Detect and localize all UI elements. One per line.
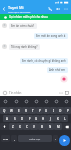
button[interactable]: Z <box>9 123 16 130</box>
button[interactable]: W <box>8 107 15 114</box>
button[interactable]: Anh nhớ em <box>49 68 66 72</box>
staticText: A <box>6 117 8 121</box>
button[interactable]: Emoji <box>2 90 8 96</box>
staticText: Y <box>39 109 41 113</box>
button[interactable]: Q <box>0 107 8 114</box>
staticText: Tin nhắn <box>9 91 22 95</box>
button[interactable]: Space <box>18 135 52 142</box>
staticText: T <box>32 109 34 113</box>
staticText: K <box>57 117 59 121</box>
button[interactable]: U <box>43 107 50 114</box>
button[interactable]: H <box>40 115 47 122</box>
button[interactable]: Backspace <box>62 123 71 130</box>
staticText: Z <box>12 125 14 129</box>
button[interactable]: Em mới ăn xong anh à <box>36 34 66 38</box>
staticText: Tiếng Việt <box>29 137 41 140</box>
staticText: H <box>42 117 45 121</box>
button[interactable]: Theme <box>51 98 61 104</box>
button[interactable]: Send <box>59 135 70 146</box>
staticText: G <box>35 117 38 121</box>
button[interactable]: T <box>29 107 36 114</box>
button[interactable]: GIF <box>11 98 21 104</box>
button[interactable]: N <box>46 123 54 130</box>
button[interactable]: Settings <box>0 98 11 104</box>
button[interactable]: J <box>47 115 54 122</box>
button[interactable]: S <box>11 115 19 122</box>
button[interactable]: Tối nay rảnh không? <box>11 45 38 49</box>
button[interactable]: I <box>50 107 57 114</box>
button[interactable]: X <box>16 123 23 130</box>
button[interactable]: F <box>26 115 33 122</box>
button[interactable]: More <box>58 90 64 96</box>
button[interactable]: Em ăn cơm chưa? <box>11 24 35 28</box>
button[interactable]: Clipboard <box>31 98 41 104</box>
staticText: L <box>64 117 66 121</box>
staticText: R <box>25 109 27 113</box>
button[interactable]: Period <box>53 135 58 142</box>
button[interactable]: A <box>3 115 11 122</box>
staticText: P <box>67 109 69 113</box>
button[interactable]: R <box>22 107 29 114</box>
button[interactable]: Video call <box>54 5 62 13</box>
staticText: Em ăn cơm chưa? <box>11 24 35 28</box>
staticText: F <box>29 117 31 121</box>
staticText: Anh nhớ em <box>49 68 66 72</box>
button[interactable]: Image <box>64 90 70 96</box>
button[interactable]: Y <box>36 107 43 114</box>
button[interactable]: Gọi nhóm miễn phí cho nhau <box>0 14 71 20</box>
button[interactable]: P <box>64 107 71 114</box>
button[interactable]: Shift <box>0 123 9 130</box>
staticText: N <box>49 125 52 129</box>
staticText: M <box>57 125 60 129</box>
staticText: Em mới ăn xong anh à <box>36 34 66 38</box>
staticText: S <box>14 117 16 121</box>
staticText: C <box>26 125 28 129</box>
button[interactable]: C <box>23 123 30 130</box>
staticText: Truy cập 2 giờ trước <box>8 10 31 13</box>
button[interactable]: K <box>54 115 61 122</box>
staticText: Q <box>3 109 6 113</box>
button[interactable]: Translate <box>41 98 51 104</box>
button[interactable]: M <box>54 123 62 130</box>
button[interactable]: V <box>30 123 38 130</box>
button[interactable]: D <box>19 115 26 122</box>
staticText: O <box>59 109 62 113</box>
button[interactable]: B <box>38 123 46 130</box>
staticText: . <box>55 137 56 141</box>
button[interactable]: More <box>61 98 71 104</box>
staticText: X <box>19 125 21 129</box>
staticText: I <box>53 109 55 113</box>
staticText: D <box>21 117 24 121</box>
button[interactable]: More options <box>62 5 70 13</box>
staticText: Tuyet Mi <box>8 5 24 10</box>
button[interactable]: G <box>33 115 40 122</box>
button[interactable]: Sticker <box>21 98 31 104</box>
staticText: ?123 <box>3 137 9 140</box>
staticText: Tối nay rảnh không? <box>11 45 38 49</box>
button[interactable]: L <box>61 115 68 122</box>
staticText: J <box>50 117 51 121</box>
button[interactable]: Comma <box>11 135 17 142</box>
staticText: B <box>41 125 43 129</box>
staticText: U <box>45 109 48 113</box>
staticText: , <box>14 137 15 141</box>
staticText: W <box>10 109 13 113</box>
staticText: E <box>18 109 20 113</box>
staticText: Gọi nhóm miễn phí cho nhau <box>9 15 48 19</box>
button[interactable]: Em rảnh, có chuyện gì không anh <box>22 59 66 63</box>
button[interactable]: ?123 <box>1 135 10 142</box>
button[interactable]: O <box>57 107 64 114</box>
staticText: Em rảnh, có chuyện gì không anh <box>22 59 66 63</box>
button[interactable]: Call <box>46 5 54 13</box>
button[interactable]: Back <box>0 5 8 13</box>
button[interactable]: E <box>15 107 22 114</box>
staticText: V <box>33 125 35 129</box>
